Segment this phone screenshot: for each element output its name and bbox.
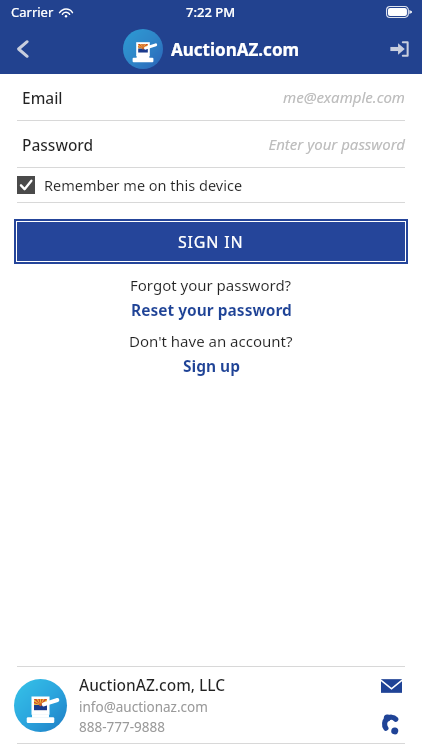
staticText: AuctionAZ.com, LLC xyxy=(79,674,226,695)
staticText: 7:22 PM xyxy=(186,3,236,21)
staticText: Sign up xyxy=(183,355,240,376)
button[interactable]: Email us xyxy=(374,669,408,703)
button[interactable]: Reset your password xyxy=(125,298,298,321)
staticText: SIGN IN xyxy=(178,231,244,253)
staticText: info@auctionaz.com xyxy=(79,698,208,716)
staticText: Remember me on this device xyxy=(44,175,243,195)
staticText: Forgot your password? xyxy=(130,275,292,295)
button[interactable]: SIGN IN xyxy=(17,222,405,261)
staticText: 888-777-9888 xyxy=(79,718,165,736)
staticText: Don't have an account? xyxy=(129,331,293,351)
button[interactable]: Sign in xyxy=(376,26,422,72)
button[interactable]: Call us xyxy=(374,707,408,741)
button[interactable]: Password xyxy=(0,121,422,167)
staticText: Email xyxy=(22,87,63,108)
staticText: me@example.com xyxy=(283,87,405,107)
staticText: Password xyxy=(22,134,94,155)
button[interactable]: Back xyxy=(0,26,46,72)
button[interactable]: Email xyxy=(0,74,422,120)
staticText: Reset your password xyxy=(131,299,292,320)
staticText: Carrier xyxy=(11,3,54,21)
button[interactable]: Remember me on this device xyxy=(0,168,422,202)
staticText: AuctionAZ.com xyxy=(171,38,300,61)
staticText: Enter your password xyxy=(268,134,405,154)
button[interactable]: Sign up xyxy=(177,354,246,377)
